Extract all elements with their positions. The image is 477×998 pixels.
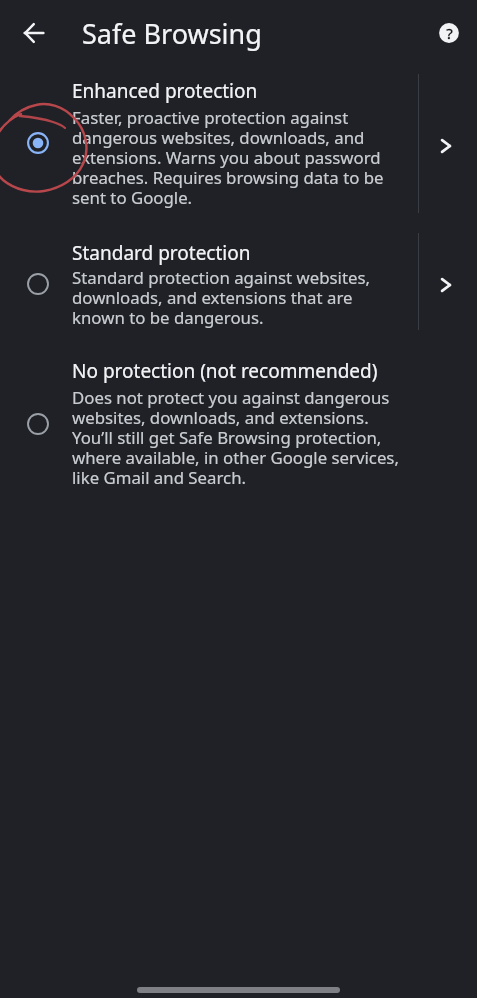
staticText: ? xyxy=(446,23,453,43)
staticText: Faster, proactive protection against dan… xyxy=(72,108,390,208)
button[interactable]: Help xyxy=(426,10,471,55)
staticText: Standard protection xyxy=(72,241,390,265)
staticText: Does not protect you against dangerous w… xyxy=(72,388,405,488)
staticText: Standard protection against websites, do… xyxy=(72,268,390,328)
button[interactable] xyxy=(0,66,477,222)
staticText: Enhanced protection xyxy=(72,79,390,103)
button[interactable]: Open details xyxy=(417,257,475,313)
button[interactable]: Open details xyxy=(417,118,475,174)
button[interactable]: Back xyxy=(11,10,56,55)
button[interactable] xyxy=(0,222,477,344)
staticText: Safe Browsing xyxy=(82,19,262,51)
staticText: No protection (not recommended) xyxy=(72,359,405,383)
button[interactable] xyxy=(0,344,477,506)
